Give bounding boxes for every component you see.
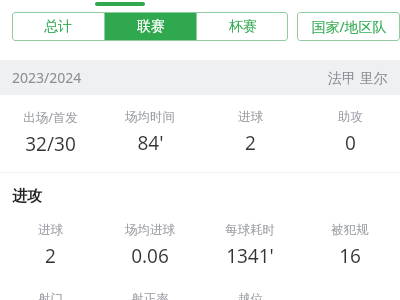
- button[interactable]: 越位: [200, 291, 300, 300]
- staticText: 助攻: [338, 109, 363, 125]
- staticText: 场均时间: [125, 109, 175, 125]
- button[interactable]: 场均进球: [100, 222, 200, 269]
- staticText: 进球: [38, 222, 63, 238]
- button[interactable]: 助攻: [300, 109, 400, 156]
- button[interactable]: 杯赛: [197, 12, 288, 41]
- staticText: 0: [345, 130, 356, 156]
- button[interactable]: 射门: [0, 291, 100, 300]
- button[interactable]: 总计: [12, 12, 104, 41]
- button[interactable]: 出场/首发: [0, 109, 100, 157]
- staticText: 射正率: [131, 291, 169, 300]
- staticText: 2: [45, 243, 56, 269]
- staticText: 0.06: [131, 243, 169, 269]
- button[interactable]: 每球耗时: [200, 222, 300, 269]
- staticText: 场均进球: [125, 222, 175, 238]
- button[interactable]: 被犯规: [300, 222, 400, 269]
- button[interactable]: 国家/地区队: [297, 12, 400, 41]
- staticText: 2: [245, 130, 256, 156]
- staticText: 进球: [238, 109, 263, 125]
- staticText: 2023/2024: [12, 68, 82, 87]
- staticText: 国家/地区队: [311, 17, 387, 36]
- staticText: 16: [339, 243, 361, 269]
- staticText: 每球耗时: [225, 222, 275, 238]
- button[interactable]: 进球: [0, 222, 100, 269]
- staticText: 越位: [238, 291, 263, 300]
- staticText: 被犯规: [331, 222, 369, 238]
- staticText: 总计: [44, 18, 72, 36]
- staticText: 32/30: [25, 131, 76, 157]
- staticText: 1341': [226, 243, 274, 269]
- staticText: 进攻: [12, 187, 42, 206]
- button[interactable]: 2023/2024: [0, 60, 400, 95]
- staticText: 射门: [38, 291, 63, 300]
- button[interactable]: 进球: [200, 109, 300, 156]
- button[interactable]: 联赛: [105, 12, 196, 41]
- button[interactable]: 场均时间: [100, 109, 200, 156]
- staticText: 法甲 里尔: [328, 68, 388, 87]
- staticText: 84': [137, 130, 164, 156]
- staticText: 联赛: [137, 18, 165, 36]
- staticText: 杯赛: [229, 18, 257, 36]
- button[interactable]: 射正率: [100, 291, 200, 300]
- staticText: 出场/首发: [23, 109, 78, 126]
